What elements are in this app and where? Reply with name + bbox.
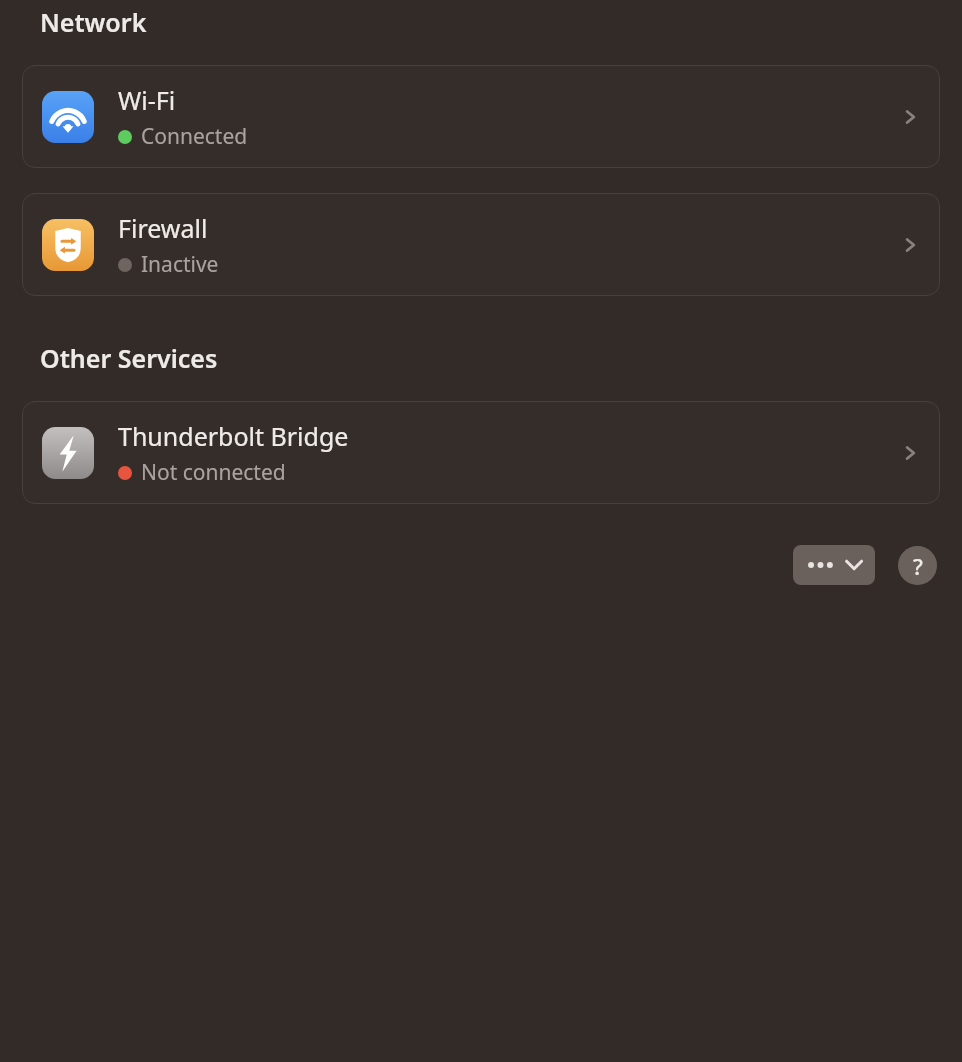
staticText: Firewall: [118, 211, 208, 245]
button[interactable]: Help: [898, 546, 937, 585]
staticText: Thunderbolt Bridge: [118, 419, 349, 453]
staticText: Wi-Fi: [118, 83, 176, 117]
staticText: Other Services: [40, 341, 218, 375]
staticText: Network: [40, 5, 147, 39]
button[interactable]: Wi-Fi: [22, 65, 940, 168]
staticText: Inactive: [141, 250, 219, 279]
button[interactable]: Thunderbolt Bridge: [22, 401, 940, 504]
staticText: Not connected: [141, 458, 286, 487]
button[interactable]: Firewall: [22, 193, 940, 296]
button[interactable]: More options: [793, 545, 875, 585]
staticText: ?: [913, 551, 923, 581]
staticText: Connected: [141, 122, 248, 151]
